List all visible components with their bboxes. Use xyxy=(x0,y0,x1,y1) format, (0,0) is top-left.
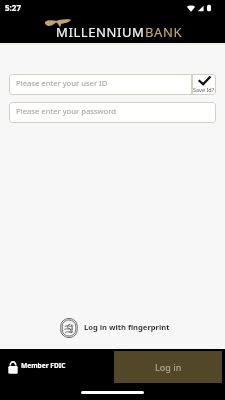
button[interactable]: Log in xyxy=(114,351,222,383)
staticText: BANK xyxy=(145,23,183,41)
button[interactable]: Save Id xyxy=(192,74,216,95)
staticText: Save Id? xyxy=(193,86,215,93)
button[interactable]: Log in with fingerprint xyxy=(60,318,170,338)
staticText: Please enter your password xyxy=(16,106,117,116)
button[interactable]: Please enter your user ID xyxy=(9,74,192,95)
staticText: MILLENNIUM xyxy=(56,23,145,41)
staticText: Please enter your user ID xyxy=(16,78,108,88)
button[interactable]: Please enter your password xyxy=(9,102,216,123)
staticText: 5:27 xyxy=(5,2,21,13)
staticText: Log in xyxy=(155,361,182,373)
button[interactable]: Member FDIC xyxy=(8,361,66,374)
staticText: Log in with fingerprint xyxy=(84,322,170,332)
staticText: Member FDIC xyxy=(21,361,66,370)
